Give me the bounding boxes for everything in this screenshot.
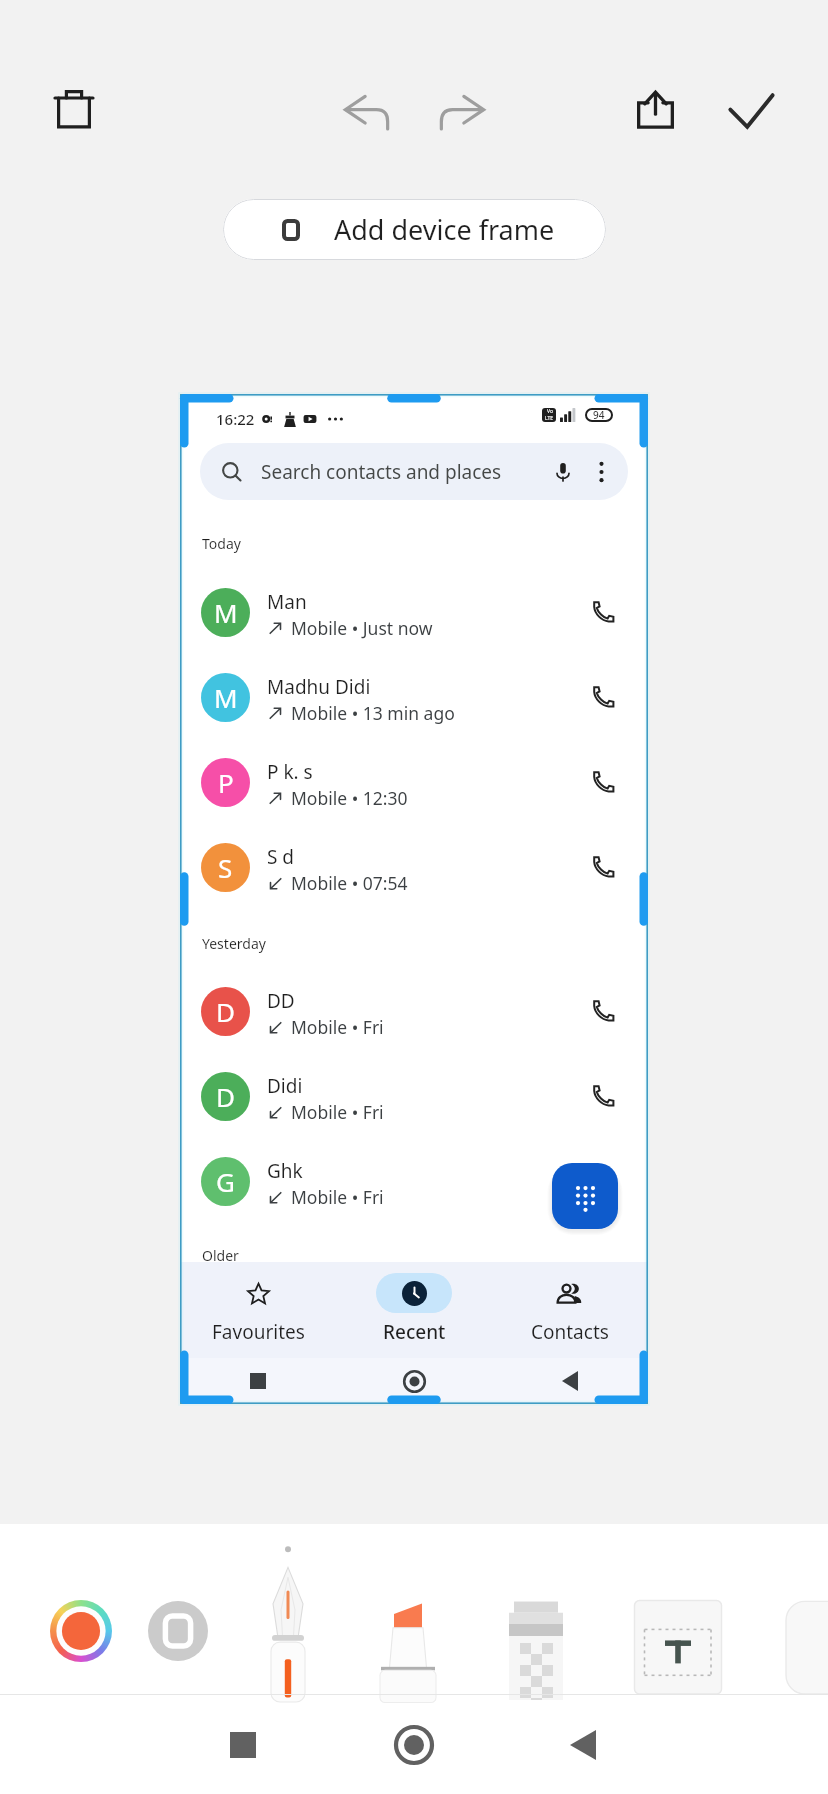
staticText: M	[214, 595, 238, 630]
staticText: Mobile • Fri	[291, 1100, 384, 1124]
button[interactable]: Add device frame	[223, 199, 606, 260]
button[interactable]: Call	[579, 986, 629, 1036]
staticText: Contacts	[531, 1319, 609, 1345]
button[interactable]: Text	[628, 1524, 728, 1694]
button[interactable]: G	[180, 1138, 648, 1224]
button[interactable]: Favourites	[180, 1262, 336, 1358]
button[interactable]: Colour	[46, 1596, 116, 1666]
button[interactable]: Eraser	[486, 1524, 586, 1694]
staticText: S	[218, 850, 233, 885]
button[interactable]: Call	[579, 1156, 629, 1206]
staticText: D	[216, 994, 235, 1029]
staticText: Add device frame	[334, 211, 555, 248]
button[interactable]: Pen	[238, 1524, 338, 1694]
staticText: DD	[267, 988, 295, 1014]
button[interactable]: S	[180, 824, 648, 910]
button[interactable]: Search contacts and places	[200, 443, 628, 500]
staticText: Mobile • 07:54	[291, 871, 408, 895]
staticText: Mobile • Just now	[291, 616, 433, 640]
button[interactable]: Contacts	[492, 1262, 648, 1358]
button[interactable]: M	[180, 569, 648, 655]
staticText: S d	[267, 844, 295, 870]
staticText: 94	[593, 408, 605, 422]
button[interactable]: P	[180, 739, 648, 825]
button[interactable]: Home	[384, 1715, 444, 1775]
button[interactable]: D	[180, 1053, 648, 1139]
button[interactable]: Shape	[143, 1596, 213, 1666]
button[interactable]: D	[180, 968, 648, 1054]
button[interactable]: Share	[620, 74, 690, 144]
button[interactable]: Recents	[213, 1715, 273, 1775]
staticText: Ghk	[267, 1158, 303, 1184]
staticText: P k. s	[267, 759, 313, 785]
button[interactable]: Recent	[336, 1262, 492, 1358]
staticText: Madhu Didi	[267, 674, 371, 700]
button[interactable]: Undo	[332, 78, 400, 146]
staticText: Yesterday	[202, 934, 266, 953]
staticText: Recent	[383, 1319, 446, 1345]
staticText: Mobile • 12:30	[291, 786, 408, 810]
button[interactable]: Done	[716, 76, 786, 146]
button[interactable]: Call	[579, 757, 629, 807]
staticText: Search contacts and places	[261, 459, 502, 485]
button[interactable]: Redo	[428, 78, 496, 146]
staticText: M	[214, 680, 238, 715]
staticText: Today	[202, 534, 241, 553]
staticText: P	[218, 765, 234, 800]
staticText: Mobile • Fri	[291, 1015, 384, 1039]
button[interactable]: Delete	[39, 73, 109, 143]
staticText: Older	[202, 1246, 239, 1265]
staticText: Favourites	[212, 1319, 305, 1345]
button[interactable]: Call	[579, 672, 629, 722]
staticText: Mobile • Fri	[291, 1185, 384, 1209]
button[interactable]: Dialpad	[552, 1163, 618, 1229]
button[interactable]: Call	[579, 587, 629, 637]
staticText: Vo	[547, 408, 553, 415]
staticText: Mobile • 13 min ago	[291, 701, 455, 725]
staticText: LTE	[545, 415, 554, 422]
button[interactable]: Back	[553, 1715, 613, 1775]
button[interactable]: Call	[579, 842, 629, 892]
button[interactable]: Call	[579, 1071, 629, 1121]
button[interactable]: Sticker	[786, 1524, 828, 1694]
button[interactable]: M	[180, 654, 648, 740]
staticText: Didi	[267, 1073, 303, 1099]
button[interactable]: Highlighter	[358, 1524, 458, 1694]
staticText: 16:22	[216, 409, 255, 429]
staticText: Man	[267, 589, 307, 615]
staticText: D	[216, 1079, 235, 1114]
staticText: G	[216, 1164, 235, 1199]
